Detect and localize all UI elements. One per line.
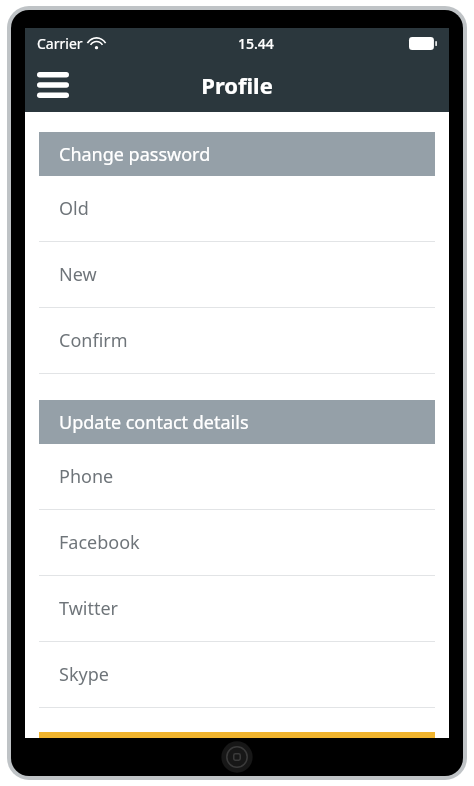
button[interactable]: Old xyxy=(39,176,435,241)
button[interactable]: New xyxy=(39,242,435,307)
button[interactable]: Twitter xyxy=(39,576,435,641)
staticText: Change password xyxy=(59,142,211,167)
staticText: Confirm xyxy=(59,328,128,353)
staticText: Facebook xyxy=(59,530,140,555)
staticText: Skype xyxy=(59,662,109,687)
button[interactable]: Change password xyxy=(39,132,435,176)
staticText: 15.44 xyxy=(238,34,274,53)
staticText: Phone xyxy=(59,464,114,489)
button[interactable]: Update contact details xyxy=(39,400,435,444)
button[interactable]: Confirm xyxy=(39,308,435,373)
staticText: Update contact details xyxy=(59,410,249,435)
button[interactable]: Facebook xyxy=(39,510,435,575)
other: Home xyxy=(220,740,254,774)
staticText: New xyxy=(59,262,97,287)
button[interactable]: Menu xyxy=(29,63,77,107)
button[interactable]: Phone xyxy=(39,444,435,509)
button[interactable]: Skype xyxy=(39,642,435,707)
staticText: Old xyxy=(59,196,89,221)
staticText: Carrier xyxy=(37,34,83,53)
staticText: Profile xyxy=(201,70,273,100)
staticText: Twitter xyxy=(59,596,119,621)
